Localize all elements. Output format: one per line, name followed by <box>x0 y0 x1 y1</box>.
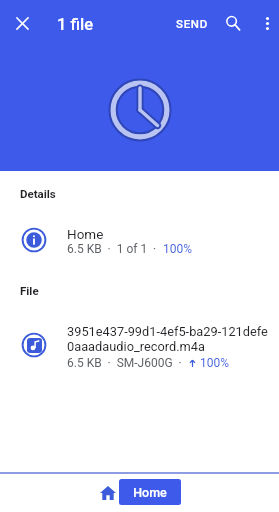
button[interactable]: More options <box>251 1 279 45</box>
button[interactable]: Home <box>119 479 181 505</box>
staticText: 100% <box>200 356 230 370</box>
staticText: Home <box>67 226 104 242</box>
staticText: 6.5 KB · 1 of 1 · <box>67 242 163 256</box>
staticText: File <box>20 284 39 297</box>
button[interactable]: Close <box>0 0 44 46</box>
staticText: 1 file <box>57 15 94 34</box>
button[interactable]: Search <box>216 1 250 45</box>
staticText: SEND <box>176 17 208 30</box>
staticText: Details <box>20 187 56 200</box>
staticText: 3951e437-99d1-4ef5-ba29-121defe0aaadaudi… <box>67 324 269 354</box>
button[interactable]: Home <box>0 217 279 257</box>
staticText: 100% <box>163 242 193 256</box>
staticText: 6.5 KB · SM-J600G · <box>67 356 188 370</box>
staticText: Home <box>133 485 167 500</box>
button[interactable]: Home <box>96 481 120 505</box>
button[interactable]: 3951e437-99d1-4ef5-ba29-121defe0aaadaudi… <box>0 316 279 372</box>
button[interactable]: SEND <box>169 11 215 36</box>
